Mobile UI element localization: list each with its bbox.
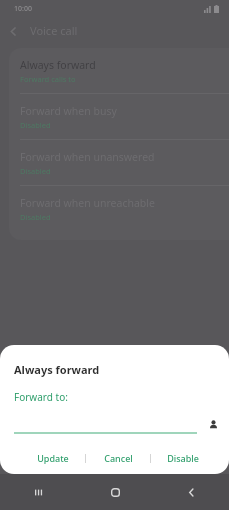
button[interactable]: Home [77, 474, 153, 510]
staticText: Forward when busy [20, 104, 117, 118]
staticText: 10:00 [14, 4, 32, 14]
button[interactable]: Update [20, 447, 85, 469]
button[interactable]: Choose contact [203, 414, 223, 434]
button[interactable]: Recent apps [0, 474, 77, 510]
staticText: Forward calls to [20, 74, 76, 84]
staticText: Update [37, 452, 69, 464]
staticText: Disabled [20, 120, 51, 130]
button[interactable]: Cancel [86, 447, 150, 469]
button[interactable]: Back [153, 474, 229, 510]
staticText: Forward when unanswered [20, 150, 155, 164]
staticText: Disable [167, 452, 199, 464]
staticText: Forward when unreachable [20, 196, 155, 210]
staticText: Always forward [20, 58, 96, 72]
button[interactable]: Always forward [9, 48, 229, 93]
button[interactable]: Disable [151, 447, 215, 469]
staticText: Disabled [20, 166, 51, 176]
staticText: Disabled [20, 212, 51, 222]
button[interactable] [14, 416, 197, 434]
staticText: Voice call [30, 23, 78, 38]
staticText: Always forward [14, 362, 100, 377]
button[interactable]: Navigate up [0, 18, 26, 44]
staticText: Cancel [104, 452, 133, 464]
staticText: Forward to: [14, 390, 68, 404]
